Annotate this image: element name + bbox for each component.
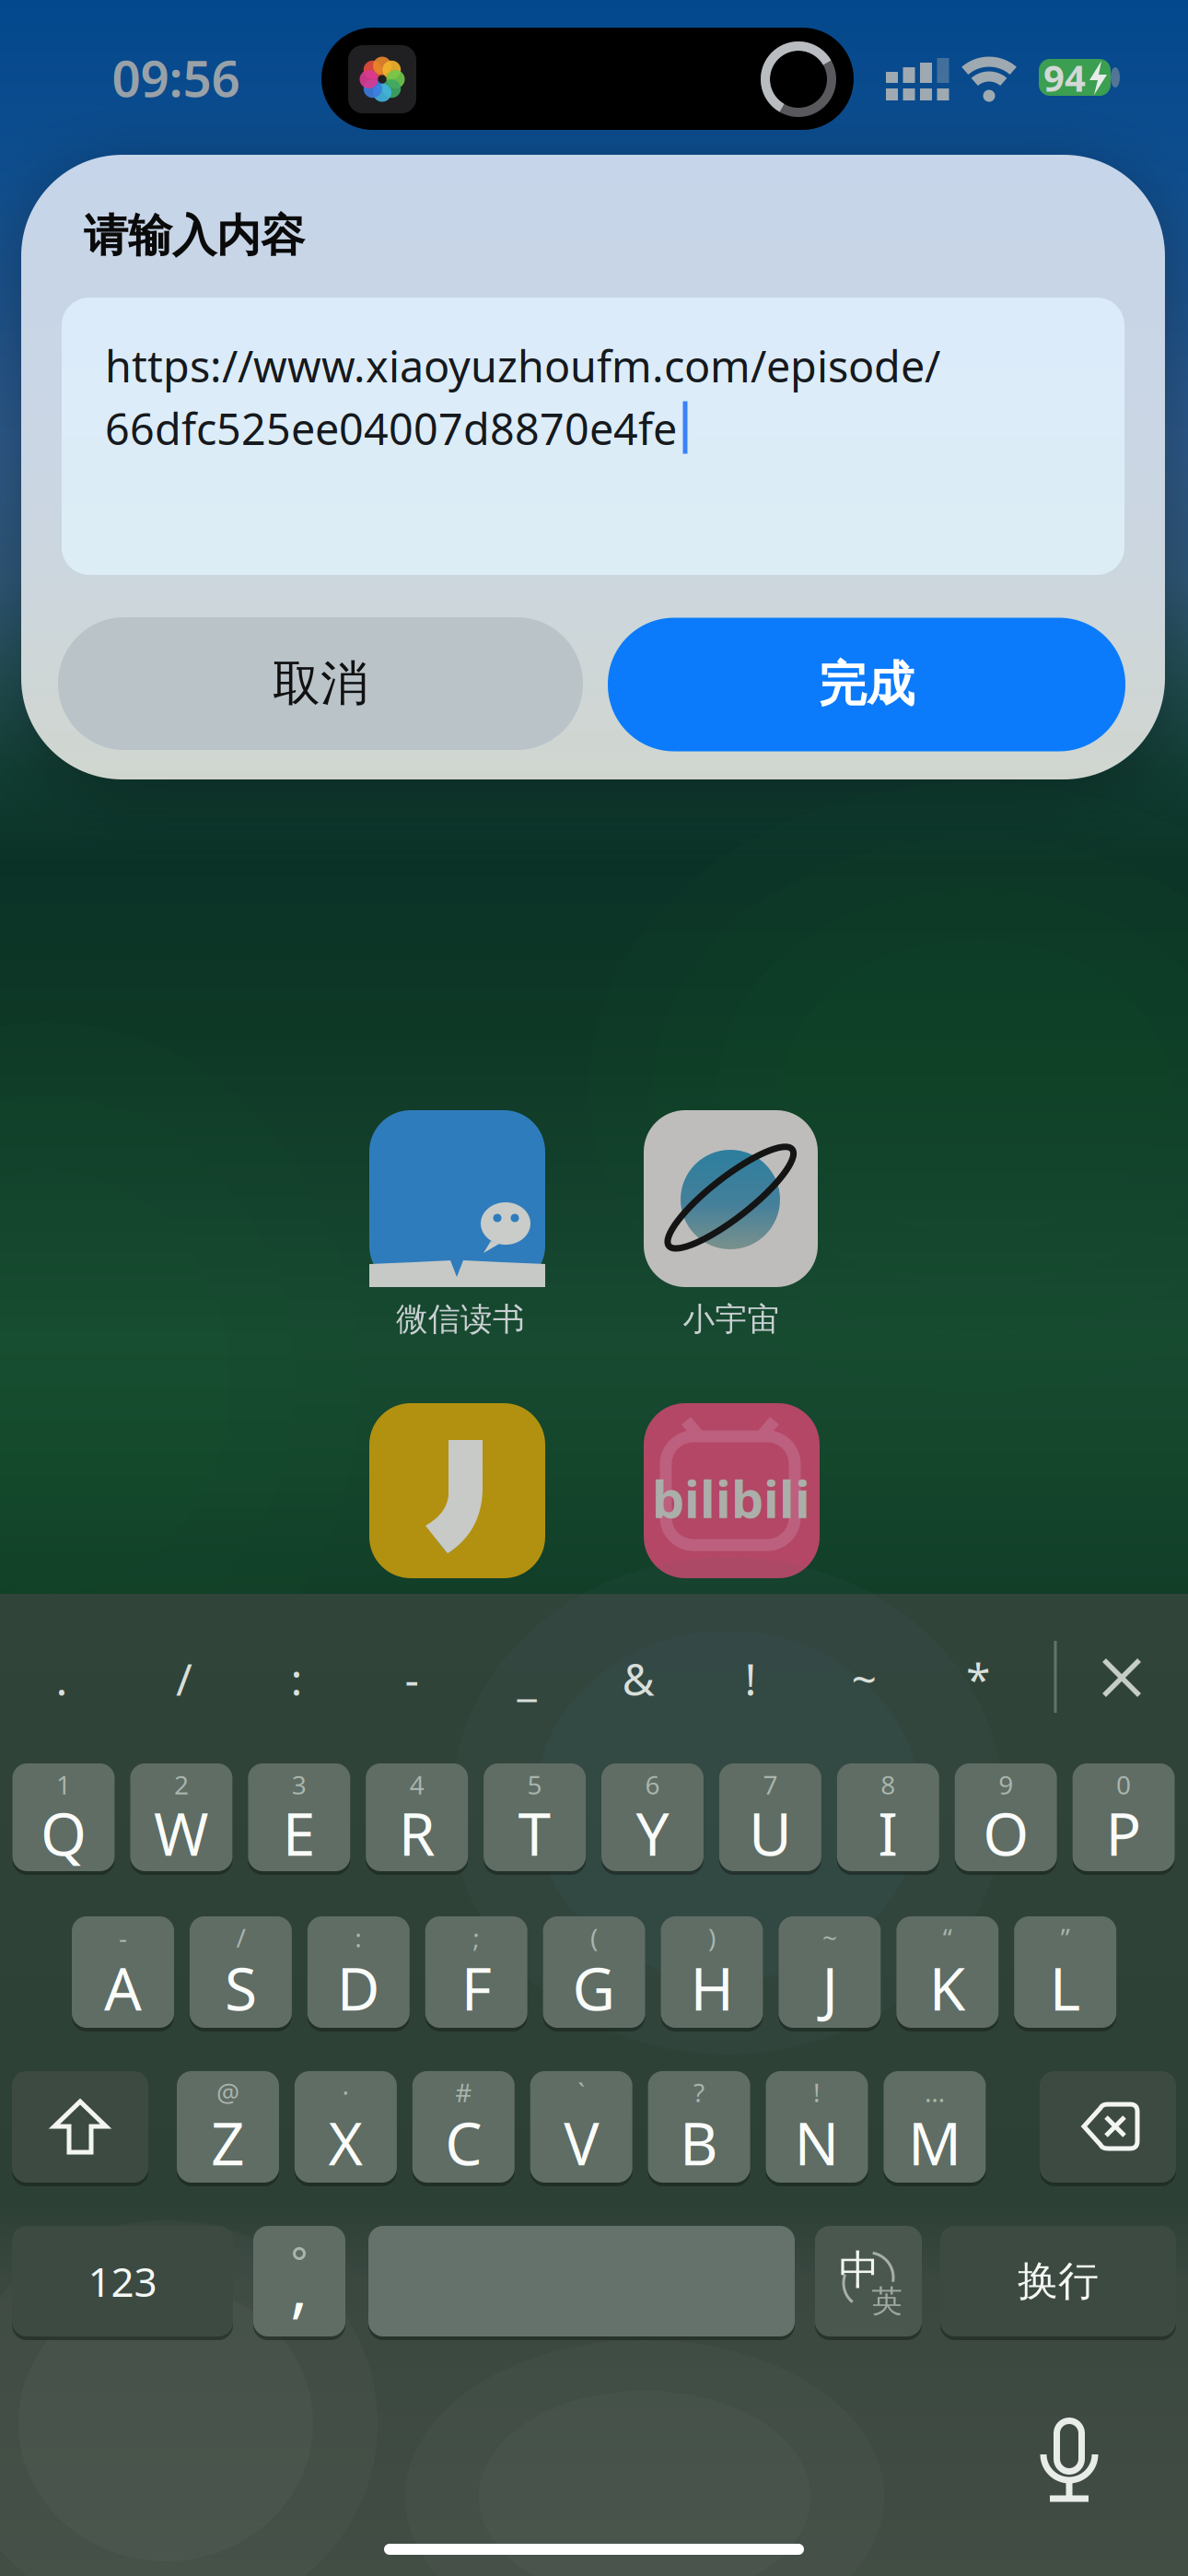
button[interactable] xyxy=(368,2226,795,2336)
staticText: 0 xyxy=(1116,1767,1131,1802)
staticText: ( xyxy=(590,1920,598,1955)
staticText: P xyxy=(1106,1794,1142,1872)
staticText: 换行 xyxy=(1018,2256,1099,2306)
staticText: N xyxy=(794,2103,839,2182)
staticText: ` xyxy=(578,2075,585,2109)
button[interactable]: ; xyxy=(425,1916,527,2028)
button[interactable]: … xyxy=(884,2071,986,2183)
staticText: A xyxy=(104,1949,142,2027)
button[interactable]: ~ xyxy=(813,1628,914,1729)
staticText: / xyxy=(236,1920,245,1955)
staticText: 8 xyxy=(881,1767,895,1802)
button[interactable]: ` xyxy=(530,2071,632,2183)
button[interactable]: 0 xyxy=(1073,1763,1175,1871)
button[interactable] xyxy=(644,1110,818,1287)
button[interactable]: . xyxy=(11,1628,112,1729)
button[interactable]: 2 xyxy=(130,1763,232,1871)
staticText: - xyxy=(405,1649,419,1708)
button[interactable]: 完成 xyxy=(608,618,1125,751)
staticText: . xyxy=(56,1649,68,1708)
button[interactable]: / xyxy=(134,1628,235,1729)
staticText: F xyxy=(461,1949,492,2027)
staticText: # xyxy=(455,2075,472,2109)
button[interactable]: ~ xyxy=(779,1916,881,2028)
button[interactable]: 3 xyxy=(248,1763,350,1871)
button[interactable] xyxy=(1040,2071,1176,2183)
staticText: bilibili xyxy=(652,1464,810,1532)
staticText: 取消 xyxy=(273,654,368,713)
button[interactable]: 4 xyxy=(366,1763,468,1871)
staticText: - xyxy=(119,1920,127,1955)
staticText: L xyxy=(1050,1949,1081,2027)
staticText: , xyxy=(290,2240,309,2330)
staticText: B xyxy=(680,2103,718,2182)
staticText: 小宇宙 xyxy=(683,1300,780,1339)
button[interactable] xyxy=(1080,1636,1163,1719)
button[interactable] xyxy=(12,2071,148,2183)
staticText: O xyxy=(983,1794,1029,1872)
button[interactable]: ) xyxy=(661,1916,763,2028)
button[interactable]: 换行 xyxy=(940,2226,1176,2336)
staticText: 7 xyxy=(763,1767,778,1802)
button[interactable]: # xyxy=(412,2071,515,2183)
button[interactable]: - xyxy=(72,1916,174,2028)
button[interactable]: ? xyxy=(648,2071,750,2183)
button[interactable]: ” xyxy=(1014,1916,1116,2028)
staticText: U xyxy=(749,1794,792,1872)
staticText: ! xyxy=(745,1649,757,1708)
staticText: R xyxy=(398,1794,435,1872)
staticText: 中 xyxy=(839,2245,879,2295)
button[interactable] xyxy=(369,1110,545,1287)
staticText: · xyxy=(342,2075,349,2109)
staticText: & xyxy=(622,1649,654,1708)
button[interactable]: 123 xyxy=(12,2226,233,2336)
staticText: W xyxy=(154,1794,209,1872)
button[interactable]: , xyxy=(253,2226,345,2336)
button[interactable]: bilibili xyxy=(644,1403,820,1578)
staticText: M xyxy=(908,2103,961,2182)
button[interactable]: : xyxy=(307,1916,410,2028)
button[interactable]: - xyxy=(361,1628,462,1729)
staticText: 3 xyxy=(292,1767,306,1802)
button[interactable]: 8 xyxy=(837,1763,939,1871)
staticText: V xyxy=(564,2103,599,2182)
staticText: ? xyxy=(694,2075,705,2109)
button[interactable]: ( xyxy=(543,1916,645,2028)
staticText: 66dfc525ee04007d8870e4fe xyxy=(105,400,677,457)
button[interactable]: 7 xyxy=(719,1763,821,1871)
button[interactable]: / xyxy=(190,1916,292,2028)
staticText: “ xyxy=(943,1920,952,1955)
staticText: T xyxy=(518,1794,551,1872)
button[interactable]: : xyxy=(246,1628,347,1729)
staticText: https://www.xiaoyuzhoufm.com/episode/ xyxy=(105,337,940,394)
staticText: Q xyxy=(41,1794,87,1872)
staticText: D xyxy=(337,1949,380,2027)
button[interactable]: ! xyxy=(766,2071,868,2183)
staticText: 请输入内容 xyxy=(84,209,305,263)
button[interactable]: 中 xyxy=(815,2226,922,2336)
button[interactable]: “ xyxy=(896,1916,999,2028)
button[interactable]: 5 xyxy=(484,1763,586,1871)
button[interactable]: 1 xyxy=(12,1763,115,1871)
button[interactable]: * xyxy=(927,1628,1029,1729)
button[interactable]: @ xyxy=(177,2071,279,2183)
staticText: 完成 xyxy=(819,655,914,714)
button[interactable]: ! xyxy=(700,1628,801,1729)
button[interactable]: 取消 xyxy=(58,617,583,750)
staticText: 123 xyxy=(88,2254,157,2308)
button[interactable]: 6 xyxy=(601,1763,704,1871)
staticText: _ xyxy=(517,1649,536,1708)
button[interactable] xyxy=(369,1403,545,1578)
staticText: J xyxy=(822,1949,837,2027)
button[interactable]: _ xyxy=(476,1628,577,1729)
staticText: 2 xyxy=(174,1767,189,1802)
button[interactable]: · xyxy=(295,2071,397,2183)
button[interactable]: & xyxy=(588,1628,689,1729)
button[interactable]: 9 xyxy=(955,1763,1057,1871)
staticText: / xyxy=(176,1649,192,1708)
staticText: 09:56 xyxy=(112,44,240,111)
staticText: : xyxy=(291,1649,303,1708)
staticText: ~ xyxy=(822,1920,837,1955)
button[interactable] xyxy=(0,0,1188,2576)
staticText: ; xyxy=(473,1920,480,1955)
